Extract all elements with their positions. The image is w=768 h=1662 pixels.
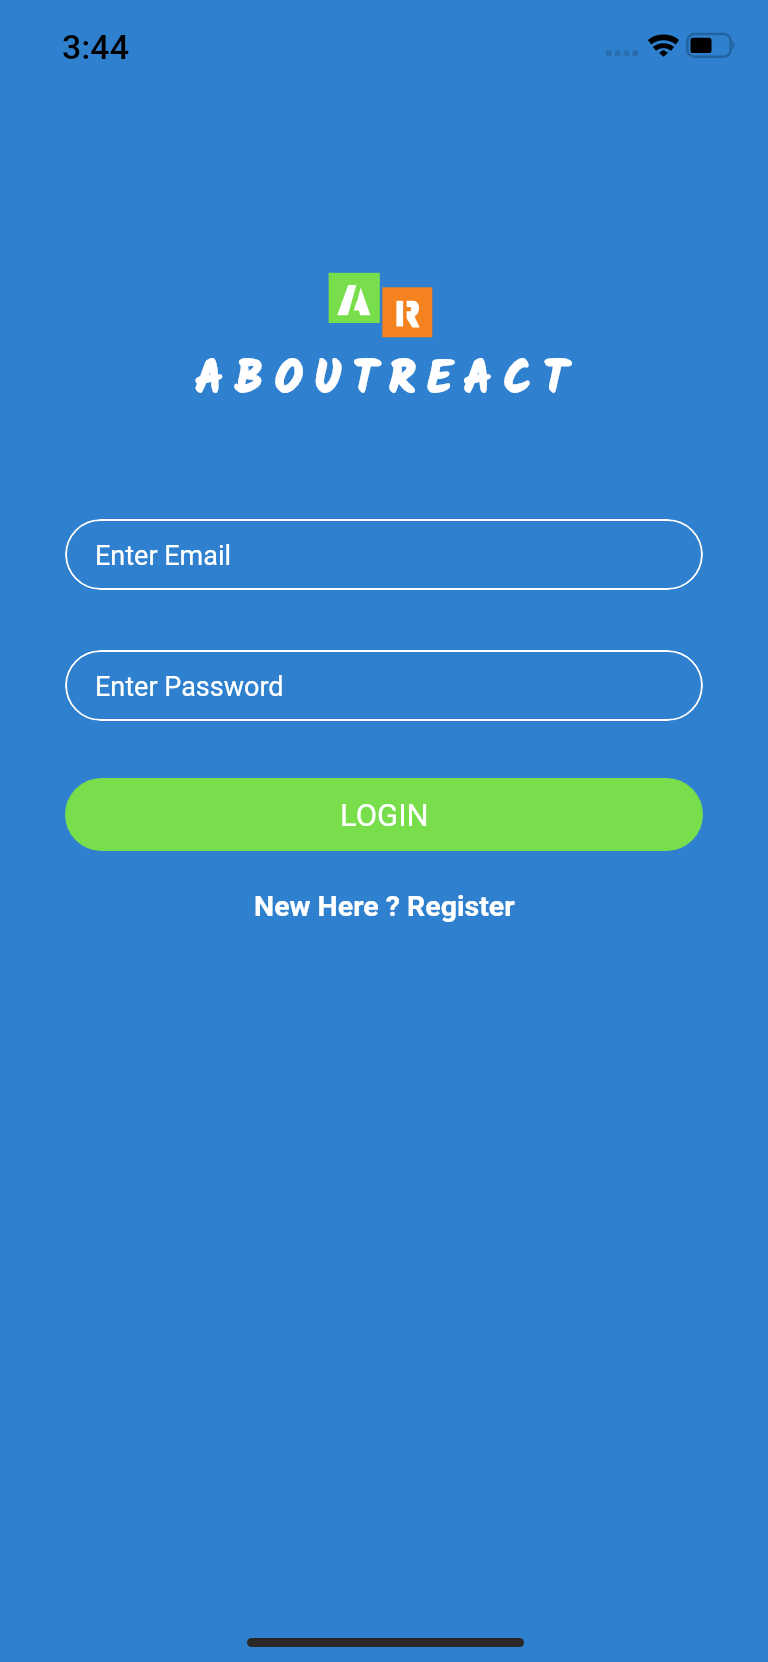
staticText: Enter Email — [95, 540, 232, 572]
staticText: ABOUTREACT — [195, 345, 579, 417]
button[interactable]: New Here ? Register — [0, 882, 768, 930]
button[interactable]: Enter Password — [65, 650, 703, 721]
other: Battery — [686, 33, 736, 58]
staticText: New Here ? Register — [254, 890, 515, 923]
other: Wi-Fi — [646, 30, 682, 60]
staticText: ABOUTREACT — [195, 345, 579, 417]
other: Cellular signal — [606, 50, 641, 57]
staticText: LOGIN — [340, 797, 429, 833]
button[interactable]: Enter Email — [65, 519, 703, 590]
button[interactable]: LOGIN — [65, 778, 703, 851]
staticText: 3:44 — [62, 27, 129, 67]
staticText: Enter Password — [95, 671, 284, 703]
other: AboutReact logo — [328, 272, 434, 339]
